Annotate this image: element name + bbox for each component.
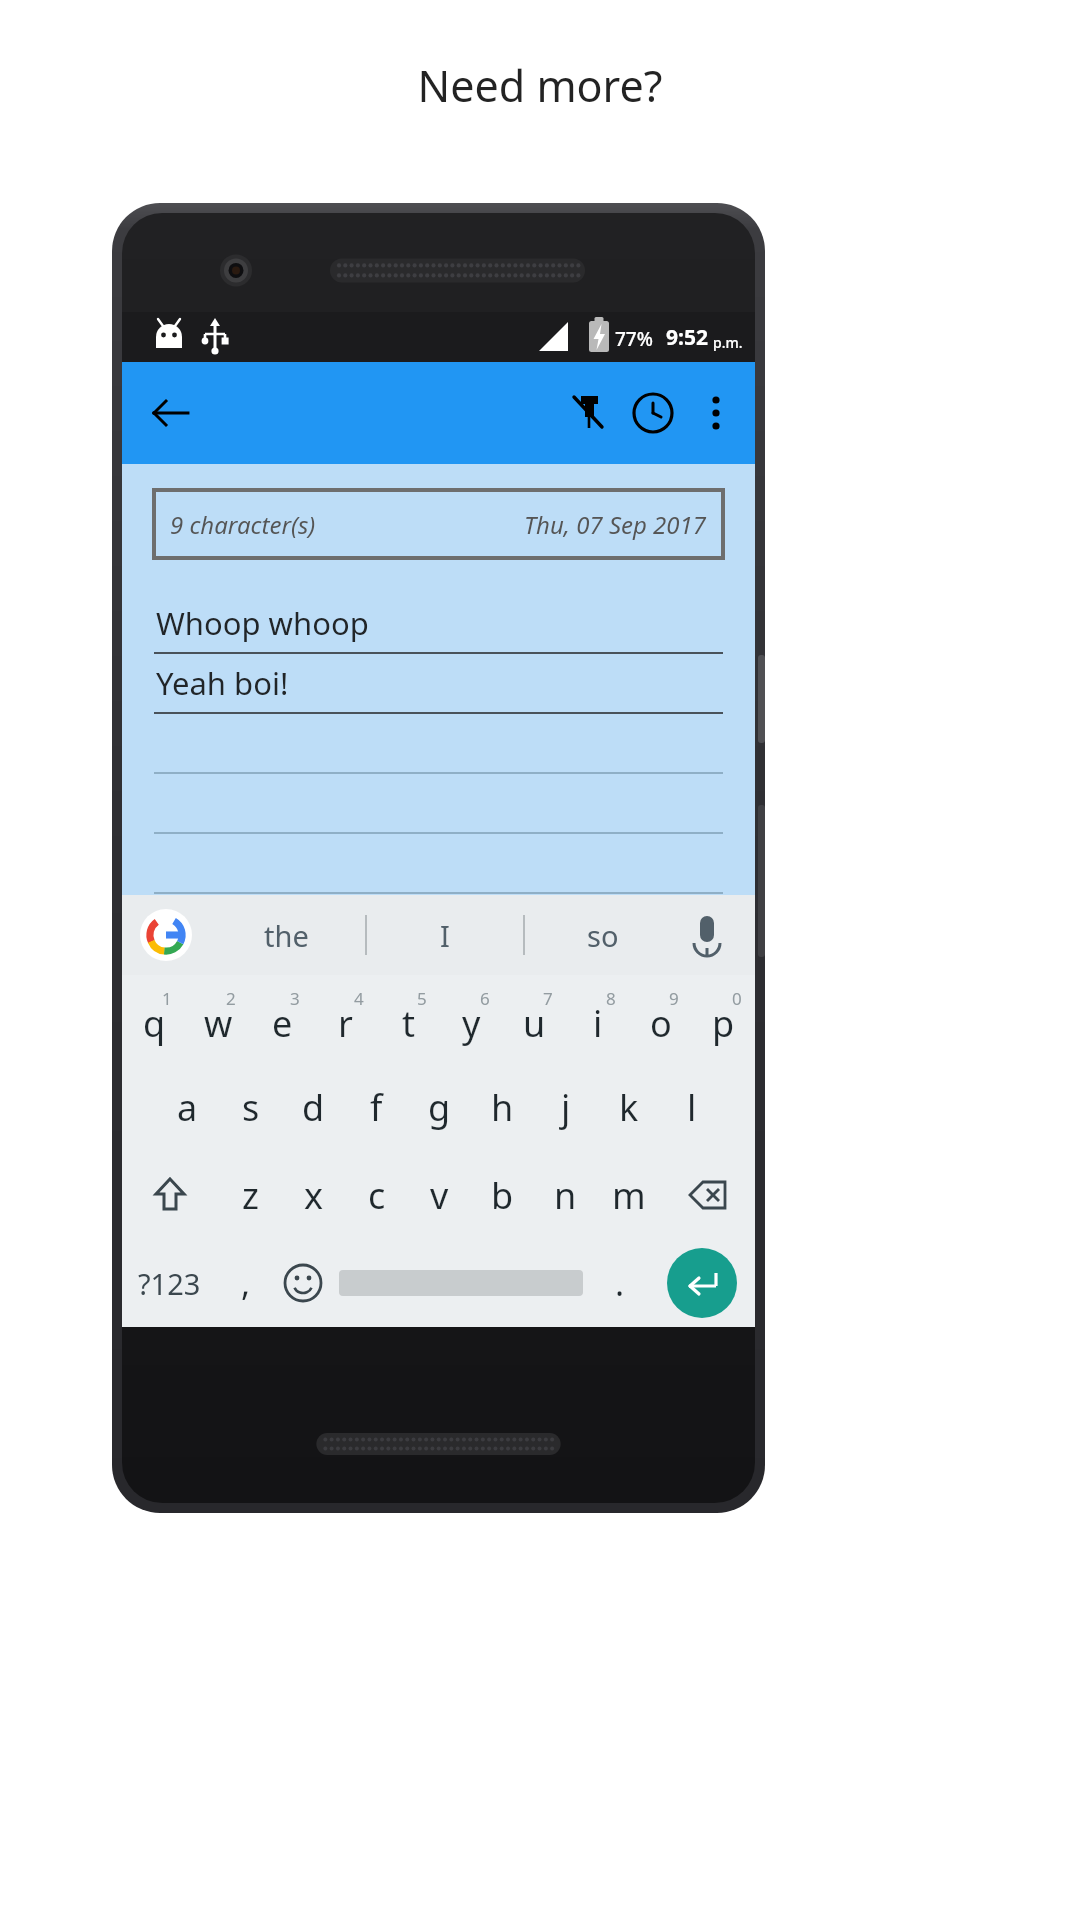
button[interactable]: d [282,1063,345,1151]
button[interactable]: 1 [122,975,186,1063]
staticText: l [687,1083,697,1132]
staticText: j [561,1083,571,1132]
staticText: Yeah boi! [156,662,289,704]
staticText: k [619,1083,639,1132]
staticText: , [241,1260,251,1306]
button[interactable]: 5 [377,975,440,1063]
staticText: s [242,1083,260,1132]
staticText: i [593,999,603,1048]
button[interactable]: 9 [629,975,692,1063]
staticText: I [440,916,450,955]
button[interactable]: b [471,1151,534,1239]
staticText: t [402,999,415,1048]
staticText: ?123 [138,1264,201,1303]
staticText: o [650,999,672,1048]
button[interactable]: I [367,895,523,975]
staticText: 9 [669,987,679,1010]
staticText: the [264,916,309,955]
button[interactable]: a [155,1063,219,1151]
staticText: 9:52 [666,323,708,352]
button[interactable]: . [591,1239,648,1327]
button[interactable]: 6 [440,975,503,1063]
staticText: 3 [290,987,300,1010]
button[interactable]: m [597,1151,660,1239]
staticText: y [462,999,481,1048]
staticText: 77% [615,326,653,352]
button[interactable]: Emoji [274,1239,331,1327]
button[interactable]: so [525,895,681,975]
button[interactable]: j [534,1063,597,1151]
button[interactable]: f [345,1063,408,1151]
staticText: c [368,1171,386,1220]
button[interactable]: Reminder [621,381,685,445]
button[interactable]: l [660,1063,723,1151]
staticText: a [177,1083,198,1132]
button[interactable]: the [208,895,365,975]
staticText: Thu, 07 Sep 2017 [524,508,707,541]
staticText: h [491,1083,514,1132]
staticText: x [304,1171,324,1220]
staticText: . [615,1260,625,1306]
button[interactable]: x [282,1151,345,1239]
button[interactable]: Space [331,1239,591,1327]
staticText: d [302,1083,325,1132]
button[interactable]: s [219,1063,282,1151]
staticText: n [554,1171,577,1220]
button[interactable]: Google [140,909,192,961]
staticText: 0 [732,987,742,1010]
button[interactable]: 9 character(s) [156,492,721,556]
button[interactable]: 8 [566,975,629,1063]
staticText: 7 [543,987,553,1010]
staticText: so [587,916,619,955]
staticText: p [712,999,735,1048]
button[interactable]: More options [685,382,747,444]
staticText: 4 [354,987,364,1010]
button[interactable]: Back [140,382,202,444]
staticText: b [491,1171,514,1220]
staticText: v [430,1171,449,1220]
button[interactable]: c [345,1151,408,1239]
staticText: Whoop whoop [156,602,369,644]
button[interactable]: g [408,1063,471,1151]
button[interactable]: 0 [692,975,755,1063]
staticText: f [370,1083,383,1132]
staticText: 1 [162,987,172,1010]
staticText: 5 [417,987,427,1010]
button[interactable]: Enter [648,1239,755,1327]
button[interactable]: k [597,1063,660,1151]
staticText: w [204,999,233,1048]
staticText: g [428,1083,451,1132]
staticText: e [272,999,293,1048]
staticText: z [242,1171,259,1220]
button[interactable]: v [408,1151,471,1239]
button[interactable]: Unpin [557,381,621,445]
staticText: m [612,1171,646,1220]
staticText: Need more? [0,56,1080,115]
staticText: 6 [480,987,490,1010]
staticText: u [523,999,546,1048]
button[interactable]: 3 [250,975,314,1063]
button[interactable]: Voice input [681,909,733,961]
button[interactable]: Backspace [660,1151,755,1239]
button[interactable]: ?123 [122,1239,217,1327]
staticText: p.m. [713,333,743,352]
staticText: 8 [606,987,616,1010]
staticText: r [338,999,353,1048]
button[interactable]: h [471,1063,534,1151]
button[interactable]: 2 [186,975,250,1063]
button[interactable]: 7 [503,975,566,1063]
button[interactable]: Shift [122,1151,218,1239]
button[interactable]: 4 [314,975,377,1063]
staticText: 9 character(s) [170,508,316,541]
staticText: q [143,999,166,1048]
button[interactable]: , [217,1239,274,1327]
button[interactable]: n [534,1151,597,1239]
staticText: 2 [226,987,236,1010]
button[interactable]: z [218,1151,282,1239]
